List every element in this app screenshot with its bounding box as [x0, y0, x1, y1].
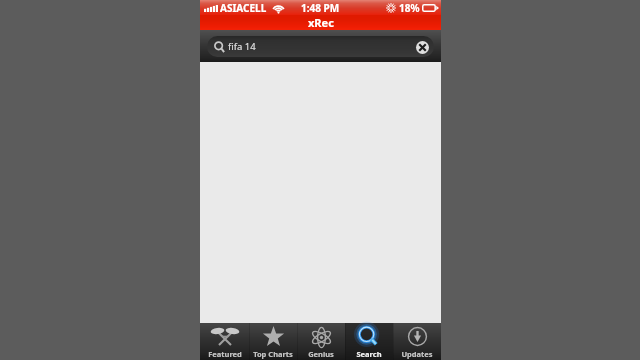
staticText: Featured: [208, 349, 242, 359]
button[interactable]: Search: [345, 323, 393, 360]
staticText: xRec: [308, 15, 334, 30]
button[interactable]: Top Charts: [249, 323, 297, 360]
button[interactable]: Featured: [200, 323, 249, 360]
button[interactable]: Clear search: [413, 38, 431, 56]
staticText: Updates: [401, 349, 433, 359]
staticText: 1:48 PM: [301, 1, 340, 15]
button[interactable]: fifa 14: [207, 36, 434, 57]
staticText: ASIACELL: [220, 1, 267, 15]
staticText: Genius: [308, 349, 334, 359]
button[interactable]: Genius: [297, 323, 345, 360]
button[interactable]: Updates: [393, 323, 441, 360]
staticText: Top Charts: [253, 349, 293, 359]
staticText: fifa 14: [228, 40, 256, 53]
staticText: Search: [356, 349, 382, 359]
staticText: 18%: [399, 1, 420, 15]
